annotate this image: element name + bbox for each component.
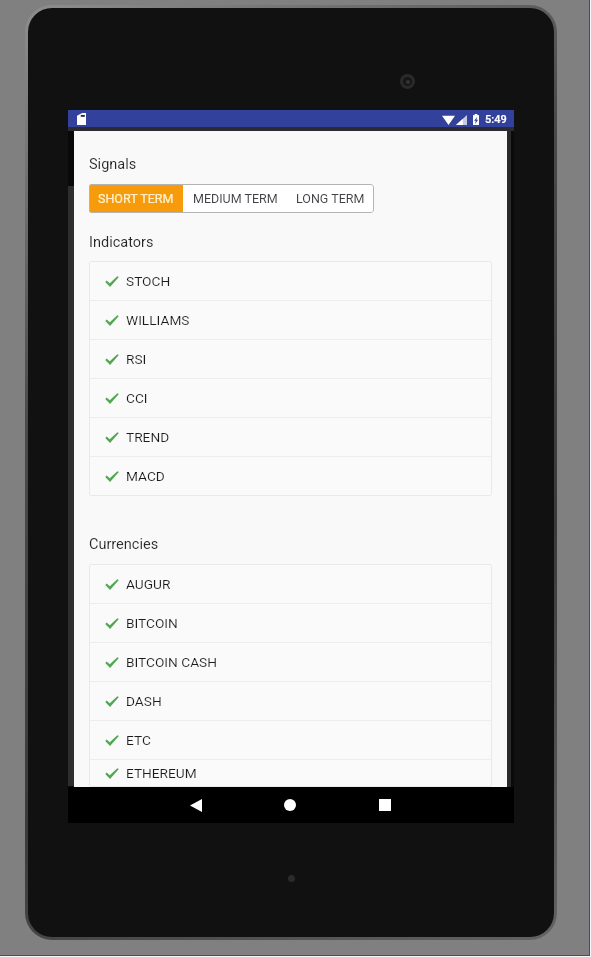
staticText: AUGUR [126,576,171,592]
staticText: WILLIAMS [126,312,190,328]
button[interactable]: Recent apps [367,787,403,823]
button[interactable]: WILLIAMS [89,301,492,339]
staticText: STOCH [126,273,171,289]
button[interactable]: BITCOIN [89,604,492,642]
button[interactable]: ETHEREUM [89,760,492,786]
staticText: Signals [89,156,137,173]
button[interactable]: DASH [89,682,492,720]
staticText: MEDIUM TERM [193,191,278,206]
button[interactable]: BITCOIN CASH [89,643,492,681]
staticText: RSI [126,351,147,367]
staticText: SHORT TERM [98,191,174,206]
button[interactable]: RSI [89,340,492,378]
staticText: Indicators [89,234,154,251]
staticText: BITCOIN CASH [126,654,217,670]
button[interactable]: Home [272,787,308,823]
button[interactable]: MEDIUM TERM [183,184,287,213]
staticText: Currencies [89,536,159,553]
button[interactable]: MACD [89,457,492,495]
staticText: ETHEREUM [126,765,197,781]
staticText: ETC [126,732,151,748]
staticText: 5:49 [485,113,507,126]
staticText: LONG TERM [296,191,365,206]
staticText: CCI [126,390,148,406]
button[interactable]: SHORT TERM [89,184,183,213]
button[interactable]: CCI [89,379,492,417]
button[interactable]: Back [178,787,214,823]
button[interactable]: TREND [89,418,492,456]
button[interactable]: LONG TERM [287,184,374,213]
staticText: BITCOIN [126,615,178,631]
button[interactable]: AUGUR [89,565,492,603]
staticText: MACD [126,468,165,484]
staticText: DASH [126,693,162,709]
button[interactable]: ETC [89,721,492,759]
button[interactable]: STOCH [89,262,492,300]
staticText: TREND [126,429,170,445]
